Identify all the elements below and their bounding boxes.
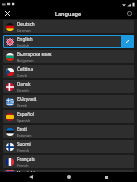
staticText: Español (17, 111, 34, 117)
button[interactable]: Deutsch (3, 20, 134, 33)
staticText: English (17, 36, 33, 42)
button[interactable]: Ελληνικά (3, 95, 134, 108)
staticText: Deutsch (17, 21, 35, 27)
staticText: Greek (17, 103, 28, 108)
staticText: Estonian (17, 133, 32, 138)
button[interactable]: Suomi (3, 140, 134, 153)
button[interactable]: Español (3, 110, 134, 123)
button[interactable]: Dansk (3, 80, 134, 93)
staticText: Language (55, 10, 82, 17)
staticText: Czech (17, 73, 27, 78)
staticText: English (17, 43, 30, 48)
button[interactable]: Eesti (3, 125, 134, 138)
staticText: Eesti (17, 126, 28, 132)
button[interactable]: Български език (3, 50, 134, 63)
staticText: German (17, 28, 31, 33)
button[interactable]: Recent apps (101, 172, 111, 182)
staticText: Български език (17, 51, 52, 57)
button[interactable]: Čeština (3, 65, 134, 78)
button[interactable]: Français (3, 155, 134, 168)
staticText: Spanish (17, 118, 31, 123)
button[interactable]: Close (3, 9, 12, 18)
staticText: Dansk (17, 81, 31, 87)
staticText: Danish (17, 88, 29, 93)
staticText: Finnish (17, 148, 30, 153)
button[interactable]: Apply language (121, 35, 134, 48)
staticText: Suomi (17, 141, 31, 147)
button[interactable]: Back (26, 172, 36, 182)
staticText: French (17, 163, 29, 168)
staticText: Ελληνικά (17, 96, 37, 102)
button[interactable]: Home (64, 172, 74, 182)
staticText: Bulgarian (17, 58, 34, 63)
button[interactable]: English (3, 35, 134, 48)
button[interactable]: Help (125, 9, 134, 18)
staticText: Français (17, 156, 35, 162)
button[interactable]: Hrvatski (3, 170, 134, 172)
staticText: Hrvatski (17, 170, 35, 172)
staticText: Čeština (17, 66, 33, 72)
